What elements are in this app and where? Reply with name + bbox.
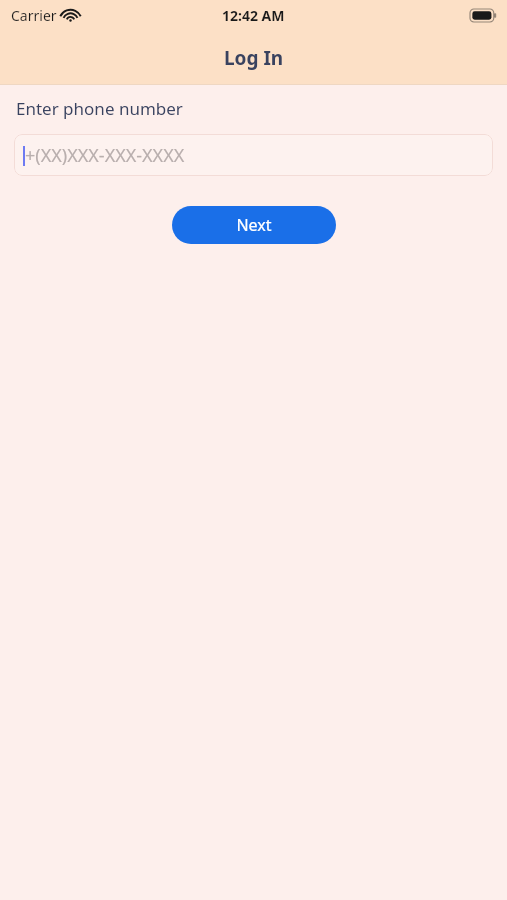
staticText: 12:42 AM: [222, 6, 285, 25]
button[interactable]: +(XX)XXX-XXX-XXXX: [14, 134, 493, 176]
staticText: +(XX)XXX-XXX-XXXX: [25, 143, 185, 168]
staticText: Log In: [224, 45, 284, 71]
staticText: Enter phone number: [16, 97, 183, 120]
staticText: Next: [236, 214, 272, 236]
staticText: Carrier: [11, 6, 57, 25]
button[interactable]: Next: [172, 206, 336, 244]
